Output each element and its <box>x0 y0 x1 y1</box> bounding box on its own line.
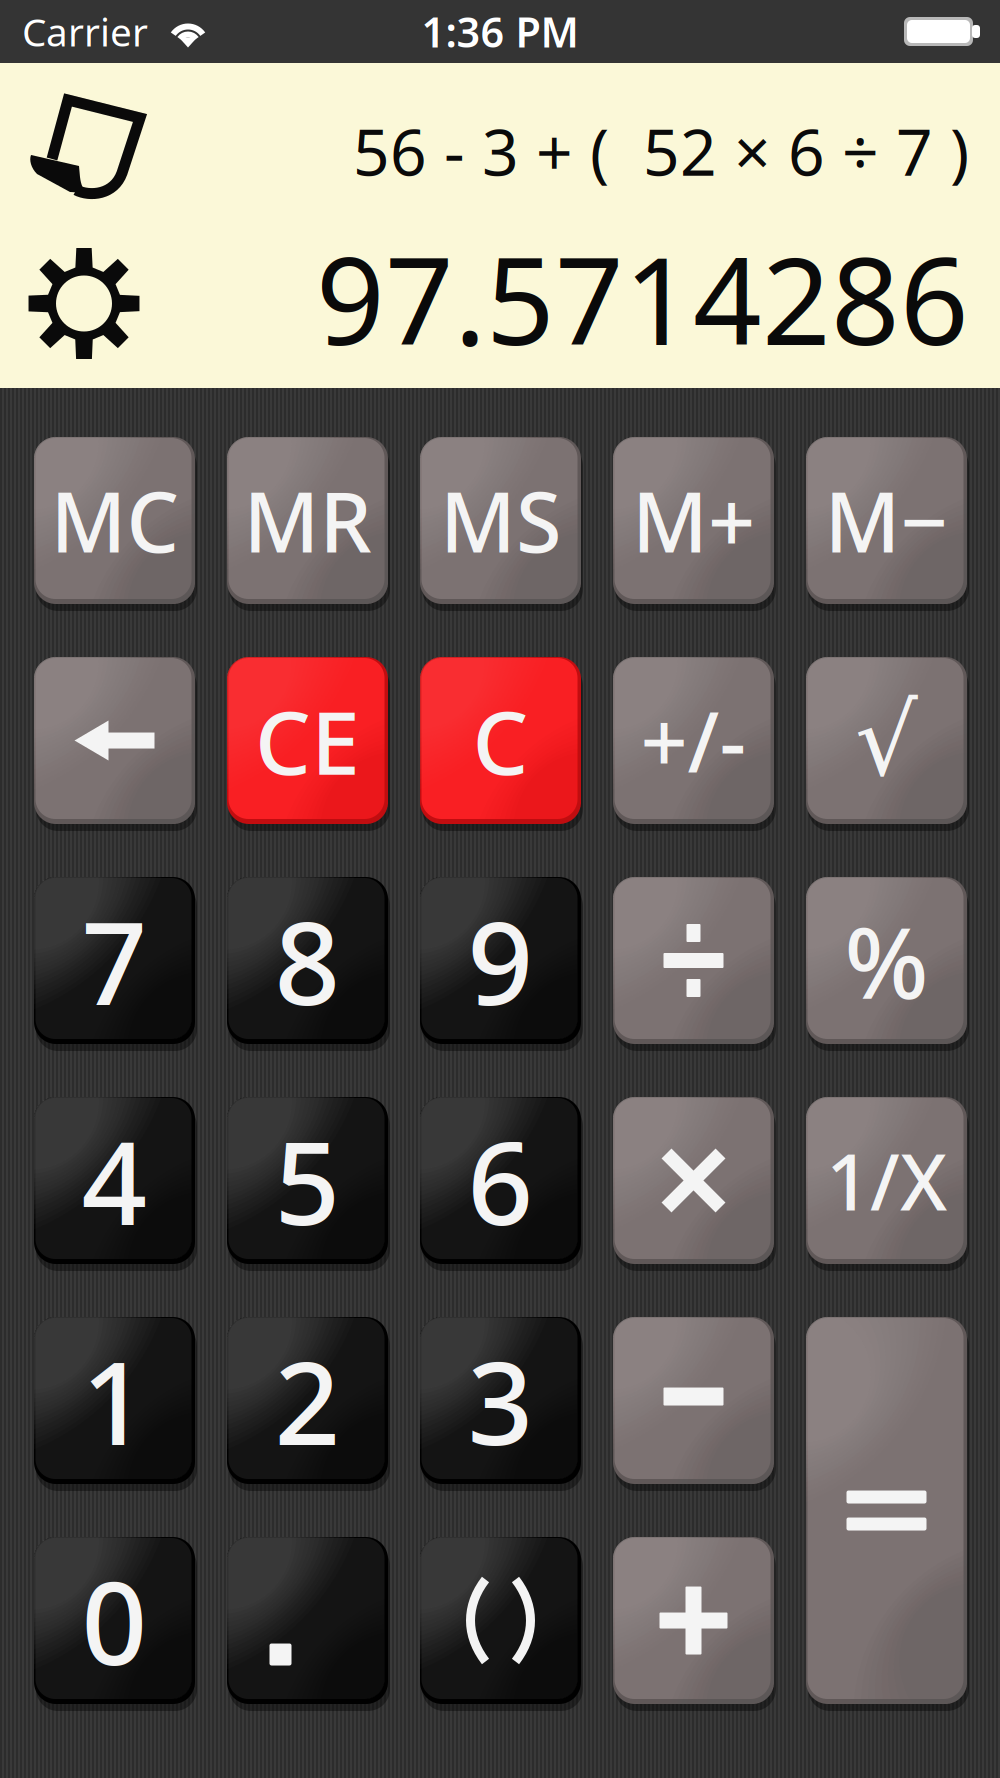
button[interactable]: 1 <box>34 1317 195 1484</box>
button[interactable]: 6 <box>420 1097 581 1264</box>
staticText: 2 <box>274 1324 340 1477</box>
button[interactable]: 7 <box>34 877 195 1044</box>
button[interactable]: % <box>806 877 967 1044</box>
button[interactable]: 2 <box>227 1317 388 1484</box>
button[interactable] <box>613 1317 774 1484</box>
staticText: Carrier <box>22 6 148 57</box>
button[interactable]: C <box>420 657 581 824</box>
staticText: M+ <box>632 466 755 575</box>
button[interactable]: MC <box>34 437 195 604</box>
button[interactable]: M+ <box>613 437 774 604</box>
button[interactable]: MR <box>227 437 388 604</box>
staticText: +/- <box>640 686 746 795</box>
button[interactable] <box>613 877 774 1044</box>
button[interactable]: 5 <box>227 1097 388 1264</box>
button[interactable] <box>613 1097 774 1264</box>
staticText: MS <box>440 466 561 575</box>
staticText: M− <box>824 466 948 575</box>
button[interactable] <box>34 657 195 824</box>
staticText: 7 <box>81 884 147 1037</box>
button[interactable] <box>227 1537 388 1704</box>
staticText: 1 <box>81 1324 147 1477</box>
button[interactable]: CE <box>227 657 388 824</box>
button[interactable] <box>806 1317 967 1704</box>
button[interactable]: MS <box>420 437 581 604</box>
button[interactable]: √ <box>806 657 967 824</box>
button[interactable]: Tape <box>28 93 146 199</box>
button[interactable]: 0 <box>34 1537 195 1704</box>
button[interactable]: 9 <box>420 877 581 1044</box>
staticText: 8 <box>274 884 340 1037</box>
staticText: √ <box>855 684 918 796</box>
staticText: 4 <box>81 1104 147 1257</box>
staticText: 6 <box>467 1104 533 1257</box>
button[interactable]: 1/X <box>806 1097 967 1264</box>
staticText: 1/X <box>826 1129 947 1232</box>
staticText: 3 <box>467 1324 533 1477</box>
staticText: 56 - 3 + ( 52 × 6 ÷ 7 ) <box>353 108 969 193</box>
button[interactable] <box>420 1537 581 1704</box>
button[interactable]: +/- <box>613 657 774 824</box>
button[interactable] <box>613 1537 774 1704</box>
button[interactable]: Settings <box>28 247 140 359</box>
staticText: % <box>844 895 928 1026</box>
button[interactable]: M− <box>806 437 967 604</box>
staticText: 9 <box>467 884 533 1037</box>
staticText: 1:36 PM <box>421 4 578 59</box>
staticText: C <box>472 682 528 799</box>
staticText: 5 <box>274 1104 340 1257</box>
button[interactable]: 3 <box>420 1317 581 1484</box>
button[interactable]: 4 <box>34 1097 195 1264</box>
staticText: 0 <box>81 1544 147 1697</box>
staticText: MR <box>243 466 371 575</box>
staticText: CE <box>255 682 360 799</box>
staticText: MC <box>50 466 178 575</box>
button[interactable]: 8 <box>227 877 388 1044</box>
staticText: 97.5714286 <box>316 219 969 378</box>
